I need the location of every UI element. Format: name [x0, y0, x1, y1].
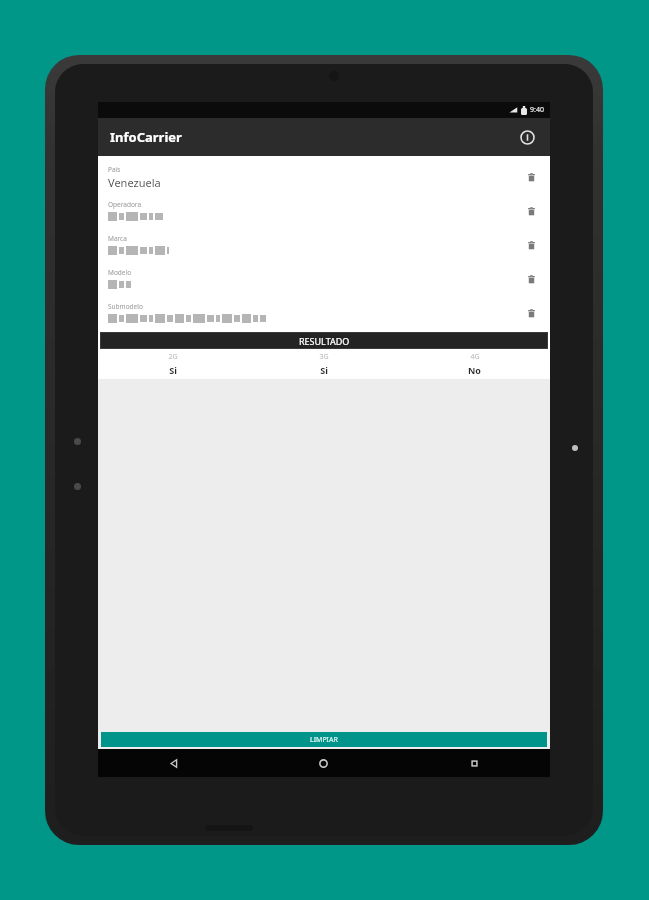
button[interactable]: Atrás: [98, 749, 248, 777]
button[interactable]: Borrar Submodelo: [520, 302, 542, 324]
staticText: Marca: [108, 234, 127, 243]
button[interactable]: Recientes: [399, 749, 550, 777]
button[interactable]: Marca: [98, 228, 550, 262]
staticText: RESULTADO: [299, 335, 350, 347]
staticText: LIMPIAR: [310, 735, 338, 745]
staticText: Si: [320, 364, 328, 376]
button[interactable]: Modelo: [98, 262, 550, 296]
staticText: 3G: [319, 352, 329, 362]
staticText: Modelo: [108, 268, 132, 277]
button[interactable]: Acerca de: [512, 122, 542, 152]
staticText: 9:40: [530, 105, 544, 115]
button[interactable]: Borrar Operadora: [520, 200, 542, 222]
button[interactable]: Submodelo: [98, 296, 550, 330]
staticText: País: [108, 165, 121, 174]
button[interactable]: 3G: [248, 352, 399, 376]
staticText: Si: [169, 364, 177, 376]
button[interactable]: Borrar Marca: [520, 234, 542, 256]
staticText: Venezuela: [108, 175, 161, 190]
staticText: 4G: [470, 352, 480, 362]
button[interactable]: 2G: [98, 352, 248, 376]
staticText: InfoCarrier: [110, 128, 182, 146]
staticText: Operadora: [108, 200, 142, 209]
button[interactable]: País: [98, 160, 550, 194]
staticText: No: [468, 364, 481, 376]
button[interactable]: Operadora: [98, 194, 550, 228]
button[interactable]: Borrar País: [520, 166, 542, 188]
button[interactable]: 4G: [399, 352, 550, 376]
staticText: 2G: [168, 352, 178, 362]
button[interactable]: LIMPIAR: [101, 732, 547, 747]
button[interactable]: Borrar Modelo: [520, 268, 542, 290]
button[interactable]: Inicio: [248, 749, 399, 777]
staticText: Submodelo: [108, 302, 143, 311]
